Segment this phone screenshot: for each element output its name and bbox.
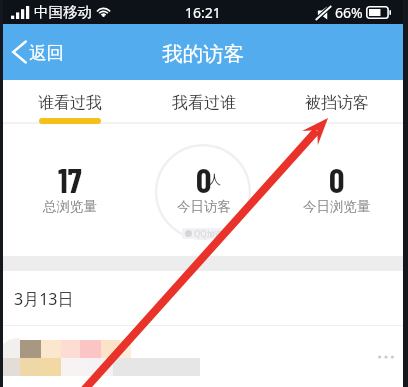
- staticText: 中国移动: [34, 3, 92, 21]
- staticText: 66%: [335, 3, 363, 22]
- staticText: 返回: [29, 42, 64, 64]
- button[interactable]: 返回: [3, 32, 76, 72]
- staticText: 谁看过我: [38, 93, 102, 113]
- button[interactable]: More options: [3, 326, 403, 387]
- staticText: 我的访客: [162, 41, 244, 67]
- button[interactable]: 被挡访客: [270, 80, 403, 124]
- staticText: 3月13日: [14, 288, 74, 310]
- staticText: 今日浏览量: [303, 198, 371, 215]
- staticText: 0: [329, 159, 345, 200]
- staticText: 0: [196, 159, 212, 200]
- staticText: 我看过谁: [172, 93, 236, 113]
- button[interactable]: 0: [137, 124, 270, 256]
- staticText: 16:21: [185, 3, 221, 22]
- button[interactable]: 我看过谁: [137, 80, 270, 124]
- button[interactable]: 17: [3, 124, 137, 256]
- staticText: 被挡访客: [305, 93, 369, 113]
- staticText: 今日访客: [177, 198, 231, 215]
- staticText: QQ加速: [194, 228, 223, 239]
- button[interactable]: 0: [270, 124, 403, 256]
- staticText: 17: [58, 159, 82, 200]
- button[interactable]: 谁看过我: [3, 80, 137, 124]
- staticText: 总浏览量: [43, 198, 97, 215]
- button[interactable]: More options: [369, 340, 403, 374]
- staticText: 人: [208, 171, 221, 187]
